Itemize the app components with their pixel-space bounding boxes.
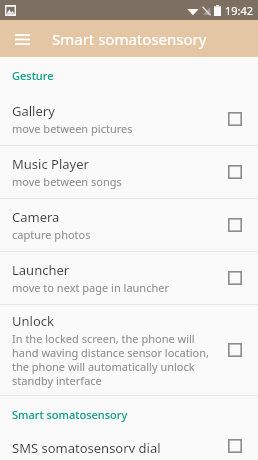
staticText: Gallery xyxy=(12,102,55,120)
button[interactable]: Music Player xyxy=(0,146,258,198)
staticText: Gesture xyxy=(12,68,54,83)
button[interactable]: Music Player checkbox xyxy=(222,159,248,185)
button[interactable]: Camera checkbox xyxy=(222,212,248,238)
staticText: move between pictures xyxy=(12,121,133,136)
button[interactable]: Camera xyxy=(0,199,258,251)
button[interactable]: Unlock xyxy=(0,305,258,395)
staticText: move to next page in launcher xyxy=(12,280,169,295)
button[interactable]: Unlock checkbox xyxy=(222,337,248,363)
button[interactable]: SMS somatosensory dial checkbox xyxy=(222,439,248,453)
button[interactable]: Gallery xyxy=(0,93,258,145)
staticText: Smart somatosensory xyxy=(12,407,128,422)
button[interactable]: Launcher xyxy=(0,252,258,304)
staticText: Unlock xyxy=(12,312,54,330)
staticText: 19:42 xyxy=(225,3,254,18)
staticText: Smart somatosensory xyxy=(52,29,207,49)
staticText: move between songs xyxy=(12,174,122,189)
staticText: capture photos xyxy=(12,227,91,242)
button[interactable]: Gallery checkbox xyxy=(222,106,248,132)
button[interactable]: Open navigation menu xyxy=(8,25,36,53)
staticText: SMS somatosensory dial xyxy=(12,439,161,453)
button[interactable]: Launcher checkbox xyxy=(222,265,248,291)
button[interactable]: SMS somatosensory dial xyxy=(0,432,258,460)
staticText: Music Player xyxy=(12,155,89,173)
staticText: In the locked screen, the phone will han… xyxy=(12,331,214,388)
staticText: Camera xyxy=(12,208,60,226)
staticText: Launcher xyxy=(12,261,70,279)
